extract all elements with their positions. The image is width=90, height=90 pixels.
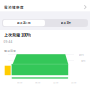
staticText: 06:00 <box>35 80 40 84</box>
staticText: 電池用量 <box>4 48 16 53</box>
staticText: 50% <box>81 59 85 63</box>
staticText: 12:00 <box>53 80 58 84</box>
staticText: 18:00 <box>71 80 76 84</box>
staticText: 00:00 <box>17 80 22 84</box>
button[interactable]: 過去10天 <box>45 20 87 26</box>
button[interactable]: 電池健康度 <box>0 0 90 11</box>
staticText: 過去10天 <box>60 21 71 25</box>
staticText: 電池健康度 <box>4 5 24 10</box>
staticText: 過去24小時 <box>17 21 31 25</box>
staticText: 09:44 <box>4 39 13 44</box>
staticText: 上次充電 100% <box>4 32 31 38</box>
staticText: 100% <box>78 53 83 57</box>
button[interactable]: 過去24小時 <box>3 20 45 26</box>
